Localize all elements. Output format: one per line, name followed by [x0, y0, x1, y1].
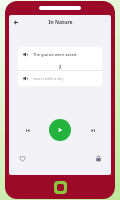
staticText: The guests were asked — [33, 52, 77, 57]
button[interactable]: Lock — [91, 151, 105, 165]
button[interactable] — [54, 181, 67, 194]
staticText: In Nature — [48, 19, 73, 26]
button[interactable]: Next — [87, 124, 99, 136]
button[interactable]: Play — [49, 119, 71, 141]
button[interactable]: Back — [9, 15, 23, 29]
button[interactable]: Previous — [21, 124, 33, 136]
button[interactable]: The guests were asked — [18, 47, 102, 62]
button[interactable]: Favorite — [15, 151, 29, 165]
staticText: was it with a dry — [33, 76, 64, 81]
button[interactable]: was it with a dry — [18, 71, 102, 86]
